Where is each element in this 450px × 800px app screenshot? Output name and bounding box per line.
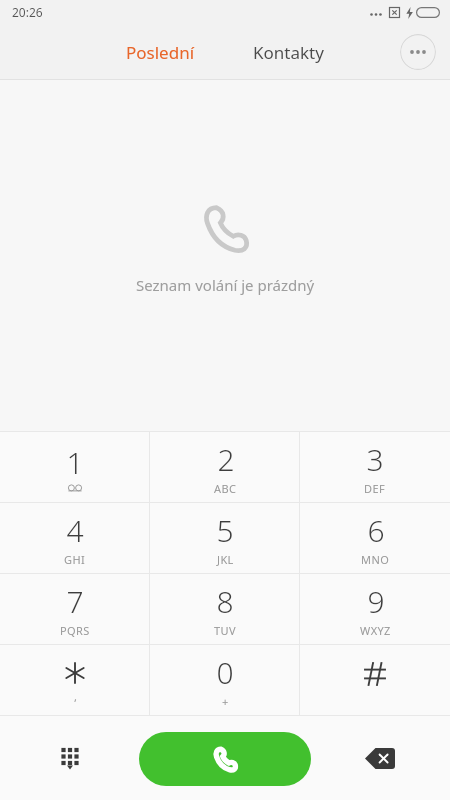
button[interactable]: 0 [150, 645, 300, 715]
button[interactable]: 3 [300, 432, 450, 502]
button[interactable]: 5 [150, 503, 300, 573]
staticText: , [74, 689, 77, 704]
staticText: 20:26 [12, 4, 43, 20]
staticText: Poslední [126, 41, 195, 64]
staticText: JKL [217, 552, 234, 567]
staticText: ABC [214, 481, 237, 496]
staticText: 6 [367, 510, 385, 551]
button[interactable]: 7 [0, 574, 150, 644]
staticText: Seznam volání je prázdný [136, 275, 315, 295]
button[interactable]: , [0, 645, 150, 715]
button[interactable]: 1 [0, 432, 150, 502]
staticText: 9 [367, 581, 385, 622]
staticText: WXYZ [360, 623, 391, 638]
button[interactable] [300, 645, 450, 715]
staticText: DEF [364, 481, 386, 496]
button[interactable]: Call [139, 732, 311, 786]
button[interactable]: Hide dialpad [48, 736, 92, 780]
button[interactable]: 4 [0, 503, 150, 573]
staticText: Kontakty [253, 41, 324, 64]
staticText: + [222, 694, 229, 709]
button[interactable]: Poslední [112, 33, 209, 72]
staticText: 1 [66, 442, 84, 483]
staticText: TUV [214, 623, 236, 638]
staticText: MNO [361, 552, 390, 567]
staticText: 5 [216, 510, 234, 551]
staticText: 2 [217, 439, 235, 480]
button[interactable]: More options [400, 34, 436, 70]
button[interactable]: 8 [150, 574, 300, 644]
staticText: 0 [216, 652, 234, 693]
button[interactable]: Kontakty [239, 33, 338, 72]
button[interactable]: 6 [300, 503, 450, 573]
staticText: 7 [66, 581, 84, 622]
staticText: PQRS [60, 623, 90, 638]
button[interactable]: Backspace [358, 736, 402, 780]
button[interactable]: 9 [300, 574, 450, 644]
staticText: GHI [64, 552, 86, 567]
staticText: 8 [216, 581, 234, 622]
staticText: 3 [366, 439, 384, 480]
staticText: 4 [66, 510, 84, 551]
button[interactable]: 2 [150, 432, 300, 502]
